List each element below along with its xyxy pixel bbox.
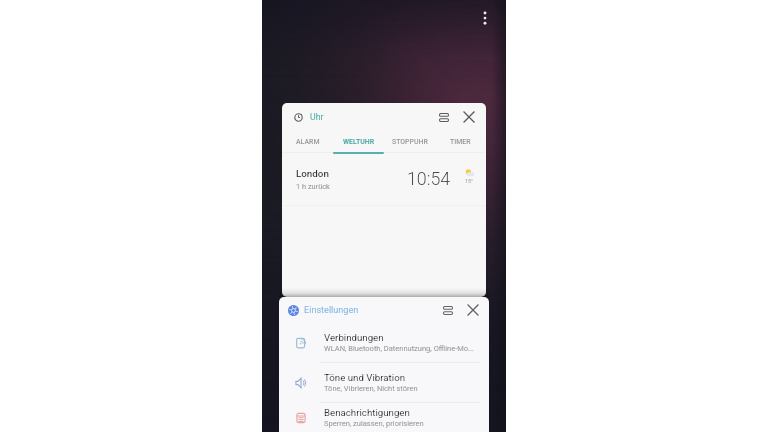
staticText: TIMER bbox=[450, 138, 471, 146]
staticText: STOPPUHR bbox=[392, 138, 428, 146]
button[interactable]: Split screen view bbox=[436, 297, 460, 323]
staticText: WLAN, Bluetooth, Datennutzung, Offline-M… bbox=[324, 344, 474, 353]
staticText: ALARM bbox=[296, 138, 320, 146]
staticText: Sperren, zulassen, priorisieren bbox=[324, 419, 424, 428]
button[interactable]: Split screen view bbox=[432, 104, 456, 130]
button[interactable]: WELTUHR bbox=[333, 131, 384, 152]
button[interactable]: Verbindungen bbox=[279, 323, 489, 362]
button[interactable]: London bbox=[282, 154, 486, 205]
button[interactable]: Benachrichtigungen bbox=[279, 403, 489, 432]
button[interactable]: More options bbox=[476, 5, 494, 29]
button[interactable]: ALARM bbox=[282, 131, 333, 152]
staticText: Benachrichtigungen bbox=[324, 407, 410, 418]
button[interactable]: Close app bbox=[460, 297, 486, 323]
staticText: Töne, Vibrieren, Nicht stören bbox=[324, 384, 418, 393]
staticText: Töne und Vibration bbox=[324, 372, 406, 383]
button[interactable]: STOPPUHR bbox=[384, 131, 435, 152]
button[interactable]: TIMER bbox=[435, 131, 486, 152]
staticText: Verbindungen bbox=[324, 332, 384, 343]
staticText: Einstellungen bbox=[304, 305, 359, 316]
staticText: Uhr bbox=[310, 112, 324, 122]
button[interactable]: Töne und Vibration bbox=[279, 363, 489, 402]
staticText: London bbox=[296, 168, 329, 179]
staticText: 1 h zurück bbox=[296, 182, 330, 191]
staticText: 10:54 bbox=[407, 168, 451, 189]
button[interactable]: Close app bbox=[456, 104, 482, 130]
staticText: 15° bbox=[465, 178, 474, 184]
staticText: WELTUHR bbox=[343, 138, 375, 146]
